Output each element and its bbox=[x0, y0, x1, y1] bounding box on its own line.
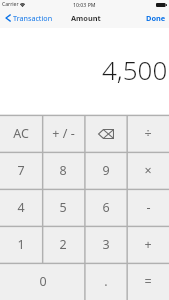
staticText: - bbox=[146, 199, 151, 216]
other: Delete bbox=[98, 129, 114, 139]
staticText: Transaction bbox=[13, 13, 53, 23]
staticText: 7 bbox=[17, 162, 25, 179]
staticText: = bbox=[144, 273, 152, 290]
button[interactable]: = bbox=[127, 263, 169, 300]
button[interactable]: Delete bbox=[85, 115, 127, 152]
staticText: . bbox=[104, 273, 108, 290]
button[interactable]: 6 bbox=[85, 189, 127, 226]
button[interactable]: Done bbox=[140, 11, 169, 25]
button[interactable]: + / - bbox=[42, 115, 84, 152]
staticText: 4,500 bbox=[102, 52, 168, 87]
staticText: × bbox=[144, 162, 152, 179]
staticText: + bbox=[144, 236, 152, 253]
button[interactable]: - bbox=[127, 189, 169, 226]
button[interactable]: 9 bbox=[85, 152, 127, 189]
button[interactable]: 8 bbox=[42, 152, 84, 189]
staticText: 6 bbox=[102, 199, 110, 216]
staticText: Done bbox=[146, 13, 166, 23]
staticText: 2 bbox=[59, 236, 67, 253]
button[interactable]: 2 bbox=[42, 226, 84, 263]
staticText: 10:03 PM bbox=[73, 1, 96, 8]
staticText: 4 bbox=[17, 199, 25, 216]
staticText: 1 bbox=[17, 236, 25, 253]
button[interactable]: ÷ bbox=[127, 115, 169, 152]
staticText: + / - bbox=[52, 125, 75, 142]
button[interactable]: 7 bbox=[0, 152, 42, 189]
staticText: 5 bbox=[59, 199, 67, 216]
button[interactable]: + bbox=[127, 226, 169, 263]
button[interactable]: AC bbox=[0, 115, 42, 152]
staticText: 9 bbox=[102, 162, 110, 179]
button[interactable]: 0 bbox=[0, 263, 85, 300]
button[interactable]: Transaction bbox=[0, 11, 59, 25]
staticText: 0 bbox=[39, 273, 47, 290]
button[interactable]: 5 bbox=[42, 189, 84, 226]
button[interactable]: 3 bbox=[85, 226, 127, 263]
button[interactable]: 1 bbox=[0, 226, 42, 263]
button[interactable]: 4 bbox=[0, 189, 42, 226]
staticText: 3 bbox=[102, 236, 110, 253]
staticText: Carrier bbox=[2, 1, 19, 8]
staticText: AC bbox=[13, 125, 29, 142]
button[interactable]: . bbox=[85, 263, 127, 300]
staticText: Amount bbox=[71, 13, 101, 23]
button[interactable]: × bbox=[127, 152, 169, 189]
staticText: 8 bbox=[59, 162, 67, 179]
staticText: ÷ bbox=[144, 125, 152, 142]
